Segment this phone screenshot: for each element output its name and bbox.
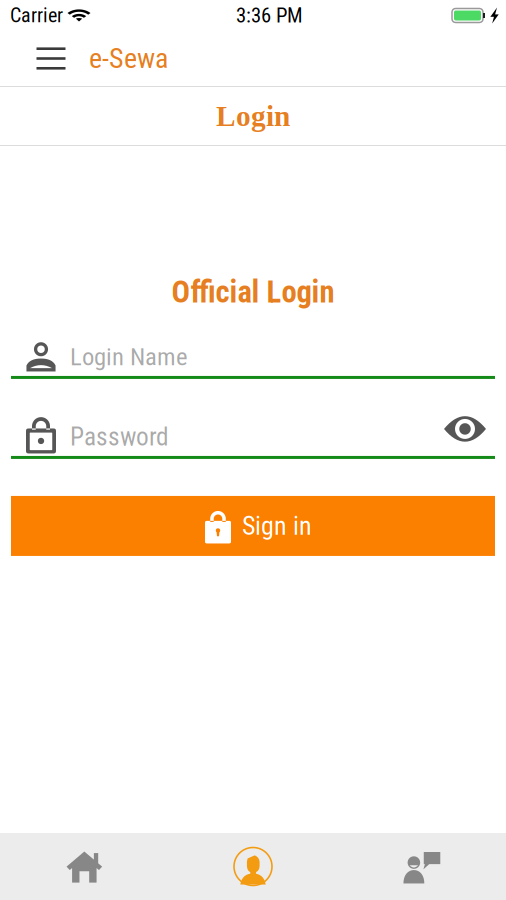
staticText: Login [216,100,290,132]
staticText: Login Name [70,342,188,371]
button[interactable]: Sign in [0,496,506,556]
button[interactable]: Support [337,833,506,900]
button[interactable]: Home [0,833,169,900]
button[interactable]: Show password [440,410,490,448]
staticText: e-Sewa [89,42,168,75]
staticText: Sign in [242,511,312,541]
staticText: 3:36 PM [236,3,303,28]
staticText: Password [70,422,169,452]
staticText: Carrier [10,4,63,27]
button[interactable]: Menu [25,32,77,84]
staticText: Official Login [171,274,334,310]
button[interactable]: Profile [169,833,337,900]
